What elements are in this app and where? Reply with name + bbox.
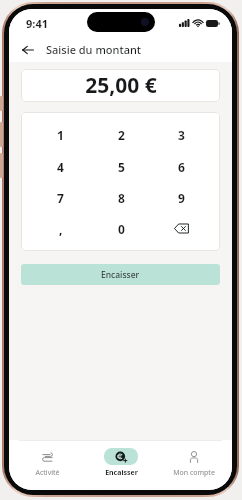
staticText: Activité xyxy=(35,468,60,478)
button[interactable]: 8 xyxy=(91,182,151,213)
button[interactable]: 3 xyxy=(151,119,211,151)
button[interactable]: 25,00 € xyxy=(21,69,220,102)
staticText: 7 xyxy=(57,190,64,206)
staticText: 3 xyxy=(178,127,185,143)
button[interactable]: Effacer xyxy=(151,213,211,244)
staticText: 6 xyxy=(178,159,185,175)
staticText: 5 xyxy=(118,159,125,175)
button[interactable]: 5 xyxy=(91,151,151,182)
button[interactable]: 7 xyxy=(30,182,91,213)
button[interactable]: Encaisser xyxy=(86,446,156,480)
button[interactable]: 2 xyxy=(91,119,151,151)
staticText: 25,00 € xyxy=(85,71,157,100)
button[interactable]: 9 xyxy=(151,182,211,213)
button[interactable]: Activité xyxy=(12,446,82,480)
staticText: 9:41 xyxy=(26,16,48,31)
staticText: 9 xyxy=(178,190,185,206)
staticText: Encaisser xyxy=(101,269,140,281)
staticText: Encaisser xyxy=(105,468,138,478)
button[interactable]: 0 xyxy=(91,213,151,244)
staticText: 8 xyxy=(118,190,125,206)
button[interactable]: 4 xyxy=(30,151,91,182)
staticText: , xyxy=(59,221,63,237)
button[interactable]: Encaisser xyxy=(21,264,220,285)
staticText: 2 xyxy=(118,127,125,143)
staticText: 4 xyxy=(57,159,64,175)
staticText: Saisie du montant xyxy=(46,42,142,57)
button[interactable]: Mon compte xyxy=(159,446,229,480)
staticText: 1 xyxy=(57,127,64,143)
button[interactable]: Retour xyxy=(18,40,38,60)
button[interactable]: 1 xyxy=(30,119,91,151)
staticText: 0 xyxy=(118,221,125,237)
button[interactable]: , xyxy=(30,213,91,244)
button[interactable]: 6 xyxy=(151,151,211,182)
staticText: Mon compte xyxy=(173,468,215,478)
